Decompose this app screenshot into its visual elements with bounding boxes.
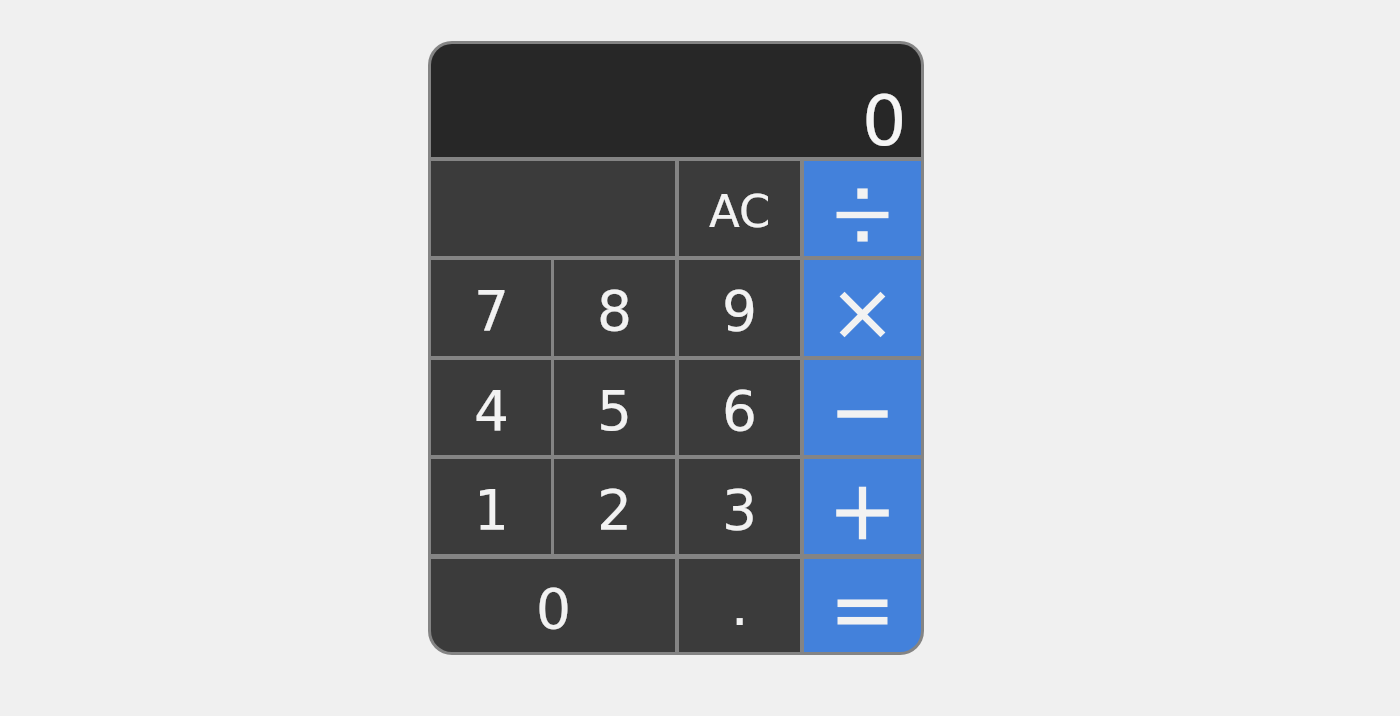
staticText: 8	[597, 279, 632, 343]
staticText: 7	[474, 279, 509, 343]
button[interactable]: 3	[679, 459, 800, 554]
button[interactable]: 1	[431, 459, 551, 554]
button[interactable]: 2	[554, 459, 675, 554]
staticText: 0	[862, 80, 907, 161]
button[interactable]: 0	[431, 44, 921, 157]
staticText: 1	[474, 478, 509, 542]
staticText: 9	[722, 279, 757, 343]
staticText: 3	[722, 478, 757, 542]
staticText: 0	[536, 577, 571, 641]
button[interactable]: 5	[554, 360, 675, 455]
button[interactable]: 7	[431, 260, 551, 356]
staticText: AC	[709, 185, 771, 237]
staticText: .	[731, 574, 749, 638]
staticText: 5	[597, 379, 632, 443]
button[interactable]: 4	[431, 360, 551, 455]
button[interactable]: 9	[679, 260, 800, 356]
button[interactable]	[804, 161, 921, 256]
button[interactable]	[804, 260, 921, 356]
staticText: 2	[597, 478, 632, 542]
staticText: 6	[722, 379, 757, 443]
staticText: 4	[474, 379, 509, 443]
button[interactable]: 0	[431, 559, 675, 652]
button[interactable]: 6	[679, 360, 800, 455]
button[interactable]	[804, 559, 921, 652]
button[interactable]	[804, 360, 921, 455]
button[interactable]	[804, 459, 921, 554]
button[interactable]: .	[679, 559, 800, 652]
button[interactable]: 8	[554, 260, 675, 356]
button[interactable]: AC	[679, 161, 800, 256]
